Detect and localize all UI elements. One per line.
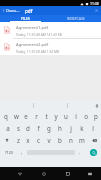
button[interactable]: Shift bbox=[0, 134, 13, 146]
button[interactable]: . bbox=[75, 146, 85, 159]
button[interactable]: pdf bbox=[21, 6, 92, 15]
staticText: w bbox=[14, 112, 19, 120]
button[interactable]: w bbox=[11, 110, 21, 122]
button[interactable]: Agreement1.pdf bbox=[0, 22, 101, 38]
button[interactable]: d bbox=[23, 122, 33, 134]
staticText: y bbox=[54, 112, 58, 120]
staticText: Today, 11:37:48 AM 141.43 KB bbox=[16, 32, 63, 36]
staticText: . bbox=[79, 149, 81, 156]
button[interactable]: n bbox=[65, 134, 76, 146]
button[interactable]: j bbox=[65, 122, 76, 134]
staticText: d bbox=[26, 124, 30, 132]
staticText: BRIEFCASE bbox=[67, 16, 85, 21]
button[interactable]: k bbox=[76, 122, 87, 134]
staticText: m bbox=[79, 136, 85, 144]
button[interactable]: Home bbox=[35, 167, 52, 180]
button[interactable]: BRIEFCASE bbox=[50, 15, 101, 22]
button[interactable]: c bbox=[33, 134, 43, 146]
staticText: q bbox=[4, 112, 8, 120]
button[interactable]: Recents bbox=[59, 167, 76, 180]
staticText: ?123 bbox=[5, 150, 13, 155]
button[interactable]: i bbox=[71, 110, 81, 122]
button[interactable]: Split screen bbox=[82, 167, 97, 180]
staticText: 11:38 bbox=[90, 1, 99, 6]
button[interactable]: Backspace bbox=[87, 134, 101, 146]
staticText: n bbox=[69, 136, 73, 144]
staticText: b bbox=[58, 136, 62, 144]
button[interactable]: , bbox=[17, 146, 27, 159]
button[interactable]: m bbox=[76, 134, 87, 146]
staticText: pdf bbox=[25, 8, 33, 14]
staticText: e bbox=[24, 112, 28, 120]
button[interactable]: p bbox=[91, 110, 101, 122]
staticText: c bbox=[37, 136, 40, 144]
button[interactable]: o bbox=[81, 110, 91, 122]
button[interactable]: u bbox=[61, 110, 71, 122]
staticText: z bbox=[17, 136, 20, 144]
button[interactable]: h bbox=[54, 122, 65, 134]
button[interactable]: Voice input bbox=[92, 101, 101, 110]
button[interactable]: t bbox=[41, 110, 51, 122]
staticText: u bbox=[64, 112, 68, 120]
staticText: , bbox=[21, 149, 23, 156]
button[interactable]: Agreement2.pdf bbox=[0, 39, 101, 55]
button[interactable]: e bbox=[21, 110, 31, 122]
button[interactable]: f bbox=[33, 122, 43, 134]
staticText: Today, 11:37:20 AM 1.52 MB bbox=[16, 49, 60, 53]
button[interactable]: Clear search bbox=[92, 6, 101, 15]
button[interactable]: l bbox=[87, 122, 98, 134]
staticText: Agreement2.pdf bbox=[16, 42, 49, 48]
staticText: Agreement1.pdf bbox=[16, 25, 49, 31]
button[interactable]: a bbox=[3, 122, 13, 134]
staticText: t bbox=[45, 112, 48, 120]
button[interactable]: r bbox=[31, 110, 41, 122]
staticText: r bbox=[35, 112, 38, 120]
staticText: g bbox=[47, 124, 51, 132]
staticText: p bbox=[94, 112, 98, 120]
staticText: x bbox=[26, 136, 30, 144]
staticText: i bbox=[75, 112, 77, 120]
staticText: v bbox=[47, 136, 51, 144]
staticText: j bbox=[70, 124, 72, 132]
staticText: l bbox=[92, 124, 94, 132]
button[interactable]: s bbox=[13, 122, 23, 134]
staticText: s bbox=[17, 124, 20, 132]
button[interactable]: Search bbox=[90, 149, 97, 156]
staticText: a bbox=[6, 124, 10, 132]
button[interactable]: Back to Documents bbox=[0, 6, 21, 15]
staticText: Docu... bbox=[6, 8, 20, 14]
button[interactable]: b bbox=[54, 134, 65, 146]
button[interactable]: q bbox=[0, 110, 11, 122]
button[interactable]: y bbox=[51, 110, 61, 122]
staticText: o bbox=[84, 112, 88, 120]
staticText: k bbox=[80, 124, 84, 132]
button[interactable]: x bbox=[23, 134, 33, 146]
button[interactable]: z bbox=[13, 134, 23, 146]
button[interactable]: v bbox=[43, 134, 54, 146]
staticText: FILES bbox=[21, 16, 30, 21]
staticText: f bbox=[37, 124, 40, 132]
button[interactable]: ?123 bbox=[0, 146, 17, 159]
staticText: h bbox=[58, 124, 62, 132]
button[interactable]: FILES bbox=[0, 15, 50, 22]
button[interactable]: Back bbox=[11, 167, 28, 180]
button[interactable]: g bbox=[43, 122, 54, 134]
